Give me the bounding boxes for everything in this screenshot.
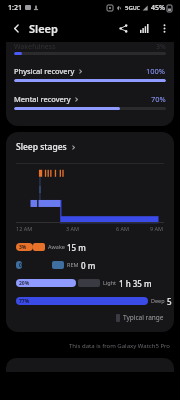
- staticText: Awake: [48, 243, 65, 250]
- staticText: 5 h 53 m: [167, 296, 174, 305]
- staticText: Physical recovery: [14, 66, 75, 76]
- staticText: 12 AM: [16, 225, 33, 232]
- staticText: This data is from Galaxy Watch5 Pro: [0, 342, 170, 350]
- staticText: 5G: [125, 4, 133, 12]
- staticText: Sleep stages: [16, 141, 67, 153]
- staticText: 45%: [151, 3, 165, 13]
- button[interactable]: Mental recovery: [6, 94, 174, 110]
- staticText: Typical range: [123, 313, 164, 322]
- button[interactable]: Back: [8, 20, 24, 36]
- staticText: 3 AM: [66, 225, 80, 232]
- staticText: Sleep: [29, 21, 58, 36]
- button[interactable]: More options: [156, 20, 172, 36]
- button[interactable]: Typical range: [16, 313, 164, 322]
- button[interactable]: 0%: [16, 260, 164, 269]
- staticText: 70%: [151, 94, 166, 104]
- staticText: 3%: [19, 244, 27, 251]
- staticText: Light: [103, 279, 117, 286]
- staticText: REM: [67, 261, 79, 268]
- staticText: Mental recovery: [14, 94, 71, 104]
- staticText: 77%: [19, 298, 30, 305]
- button[interactable]: 77%: [16, 296, 164, 305]
- button[interactable]: 3%: [16, 242, 164, 251]
- staticText: 1 h 35 m: [119, 278, 152, 287]
- staticText: UC: [133, 5, 140, 12]
- button[interactable]: Physical recovery: [6, 66, 174, 82]
- staticText: Deep: [151, 297, 165, 304]
- button[interactable]: Stats: [135, 19, 153, 37]
- button[interactable]: Sleep stages: [6, 141, 174, 153]
- staticText: 9 AM: [150, 225, 164, 232]
- staticText: 6 AM: [116, 225, 130, 232]
- staticText: 1:21: [8, 3, 22, 13]
- button[interactable]: 20%: [16, 278, 164, 287]
- staticText: 15 m: [67, 242, 86, 251]
- staticText: 0%: [19, 262, 22, 269]
- button[interactable]: Share: [114, 19, 132, 37]
- staticText: 3%: [156, 42, 166, 50]
- staticText: 20%: [19, 280, 30, 287]
- staticText: 100%: [146, 66, 166, 76]
- staticText: 0 m: [81, 260, 96, 269]
- staticText: Wakefulness: [14, 42, 56, 50]
